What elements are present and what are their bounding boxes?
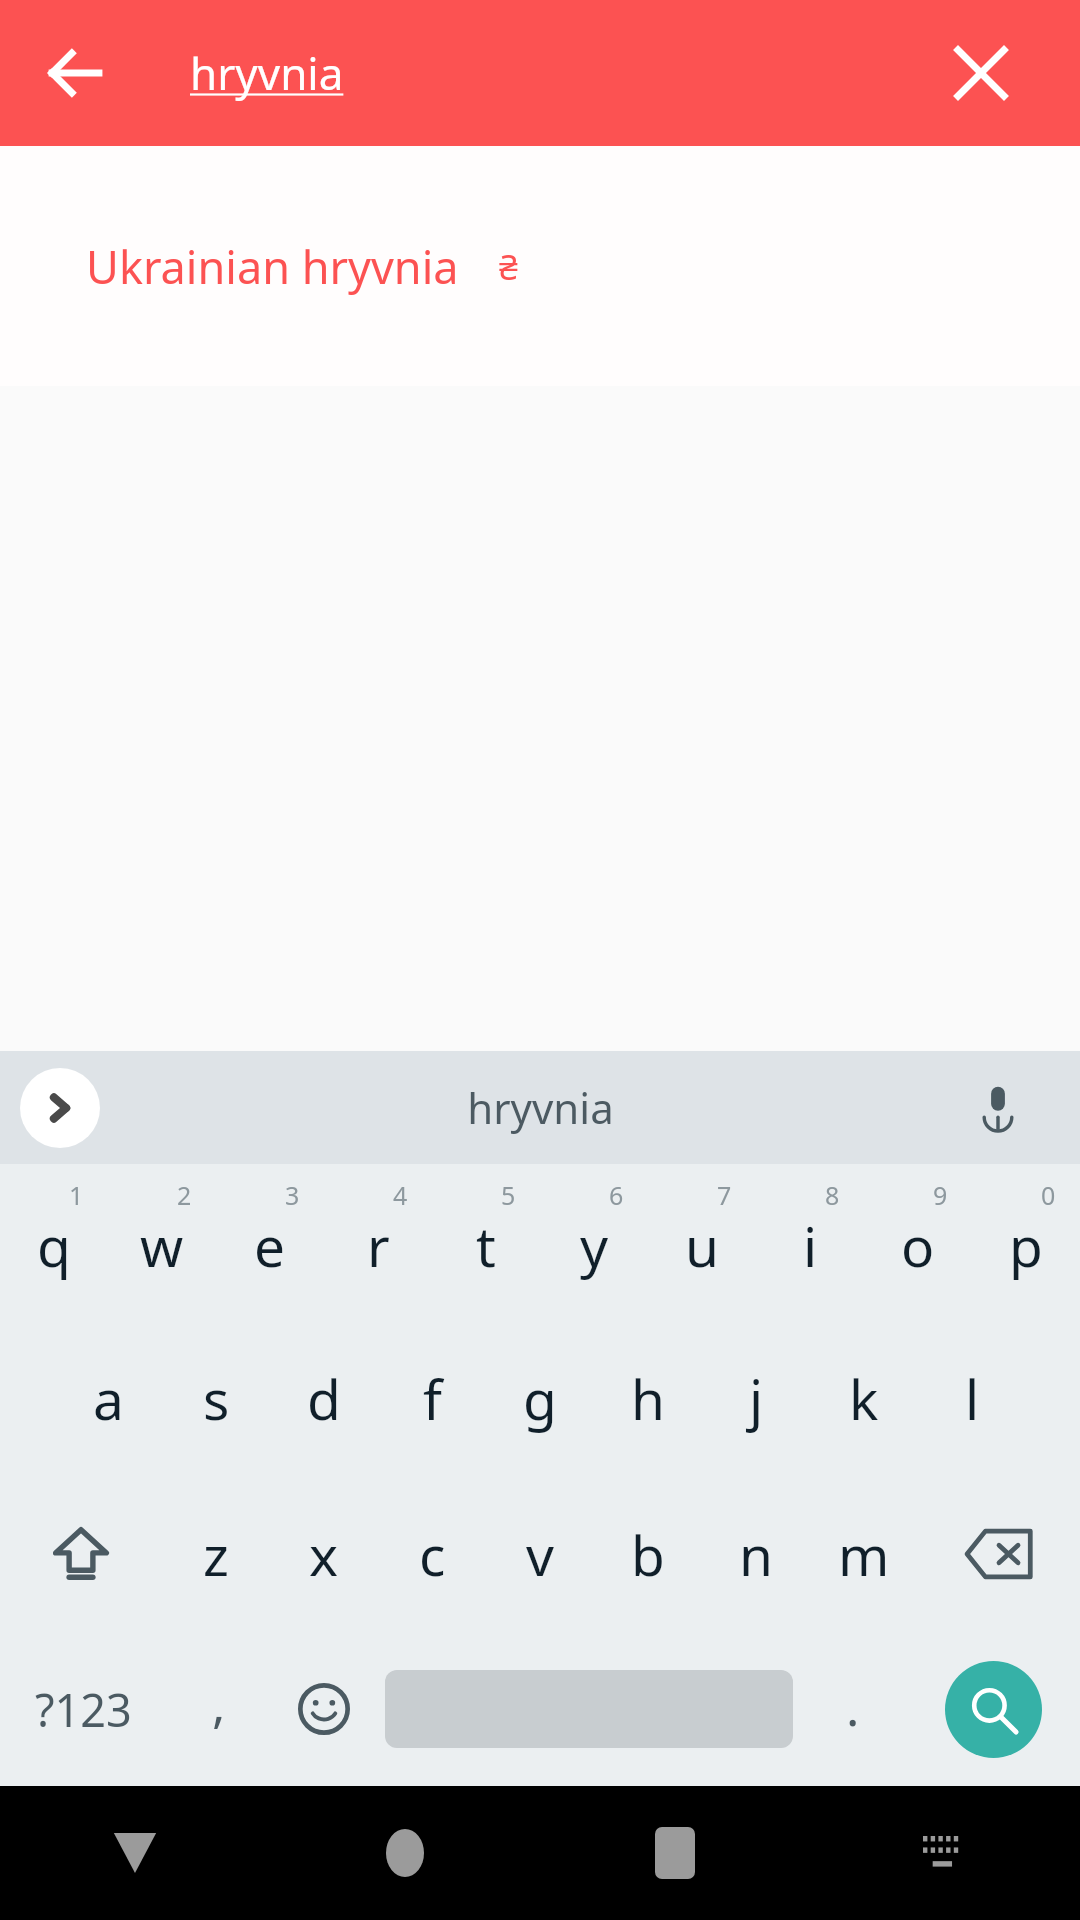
- staticText: n: [739, 1517, 773, 1592]
- staticText: ₴: [499, 244, 518, 290]
- button[interactable]: Clear query: [926, 18, 1036, 128]
- staticText: c: [419, 1517, 446, 1592]
- button[interactable]: Switch keyboard: [810, 1786, 1080, 1920]
- button[interactable]: Shift: [0, 1476, 162, 1632]
- button[interactable]: g: [486, 1320, 594, 1476]
- staticText: 4: [393, 1178, 408, 1212]
- button[interactable]: 3: [216, 1164, 324, 1320]
- staticText: ?123: [35, 1679, 132, 1740]
- staticText: a: [93, 1361, 124, 1436]
- button[interactable]: Hide keyboard: [0, 1786, 270, 1920]
- button[interactable]: 6: [540, 1164, 648, 1320]
- staticText: o: [901, 1208, 935, 1283]
- button[interactable]: z: [162, 1476, 270, 1632]
- button[interactable]: hryvnia: [320, 1051, 760, 1164]
- button[interactable]: k: [810, 1320, 918, 1476]
- button[interactable]: d: [270, 1320, 378, 1476]
- staticText: ,: [212, 1670, 226, 1738]
- button[interactable]: Ukrainian hryvnia: [0, 146, 1080, 386]
- button[interactable]: Recent apps: [540, 1786, 810, 1920]
- button[interactable]: hryvnia: [190, 43, 840, 103]
- button[interactable]: Navigate up: [20, 18, 130, 128]
- staticText: l: [965, 1361, 980, 1436]
- staticText: j: [749, 1361, 764, 1436]
- button[interactable]: j: [702, 1320, 810, 1476]
- button[interactable]: a: [54, 1320, 162, 1476]
- button[interactable]: 7: [648, 1164, 756, 1320]
- staticText: Ukrainian hryvnia: [86, 236, 459, 297]
- button[interactable]: f: [378, 1320, 486, 1476]
- button[interactable]: Emoji: [270, 1632, 378, 1786]
- staticText: g: [523, 1361, 557, 1436]
- staticText: q: [37, 1208, 71, 1283]
- button[interactable]: s: [162, 1320, 270, 1476]
- button[interactable]: Search: [907, 1632, 1080, 1786]
- staticText: i: [803, 1208, 818, 1283]
- button[interactable]: Backspace: [918, 1476, 1080, 1632]
- staticText: 5: [501, 1178, 516, 1212]
- button[interactable]: 4: [324, 1164, 432, 1320]
- staticText: 1: [69, 1178, 84, 1212]
- staticText: y: [580, 1208, 609, 1283]
- button[interactable]: h: [594, 1320, 702, 1476]
- button[interactable]: l: [918, 1320, 1026, 1476]
- staticText: b: [631, 1517, 665, 1592]
- button[interactable]: Voice input: [952, 1062, 1044, 1154]
- staticText: 7: [717, 1178, 732, 1212]
- button[interactable]: Space: [378, 1632, 799, 1786]
- staticText: d: [307, 1361, 341, 1436]
- staticText: r: [367, 1208, 390, 1283]
- staticText: k: [849, 1361, 879, 1436]
- staticText: p: [1009, 1208, 1043, 1283]
- staticText: hryvnia: [190, 43, 344, 103]
- staticText: 9: [933, 1178, 948, 1212]
- button[interactable]: 2: [108, 1164, 216, 1320]
- button[interactable]: m: [810, 1476, 918, 1632]
- staticText: x: [309, 1517, 339, 1592]
- button[interactable]: 1: [0, 1164, 108, 1320]
- staticText: 3: [285, 1178, 300, 1212]
- button[interactable]: 9: [864, 1164, 972, 1320]
- staticText: 8: [825, 1178, 840, 1212]
- button[interactable]: .: [799, 1632, 907, 1786]
- staticText: 6: [609, 1178, 624, 1212]
- button[interactable]: x: [270, 1476, 378, 1632]
- staticText: hryvnia: [467, 1079, 614, 1136]
- staticText: u: [685, 1208, 719, 1283]
- button[interactable]: 5: [432, 1164, 540, 1320]
- staticText: 0: [1041, 1178, 1056, 1212]
- staticText: s: [203, 1361, 230, 1436]
- button[interactable]: ,: [167, 1632, 270, 1786]
- button[interactable]: More suggestions: [20, 1068, 100, 1148]
- staticText: e: [254, 1208, 286, 1283]
- staticText: v: [526, 1517, 554, 1592]
- staticText: 2: [177, 1178, 192, 1212]
- button[interactable]: Home: [270, 1786, 540, 1920]
- button[interactable]: c: [378, 1476, 486, 1632]
- button[interactable]: 8: [756, 1164, 864, 1320]
- staticText: w: [140, 1208, 184, 1283]
- button[interactable]: n: [702, 1476, 810, 1632]
- staticText: z: [203, 1517, 229, 1592]
- staticText: t: [476, 1208, 496, 1283]
- button[interactable]: ?123: [0, 1632, 167, 1786]
- staticText: h: [631, 1361, 665, 1436]
- staticText: .: [846, 1673, 860, 1741]
- button[interactable]: 0: [972, 1164, 1080, 1320]
- staticText: f: [423, 1361, 442, 1436]
- button[interactable]: v: [486, 1476, 594, 1632]
- staticText: m: [838, 1517, 890, 1592]
- button[interactable]: b: [594, 1476, 702, 1632]
